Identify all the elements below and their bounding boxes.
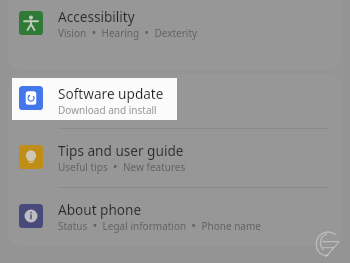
- staticText: ​Useful tips • New features: [58, 157, 186, 175]
- staticText: ​Vision • Hearing • Dexterity: [58, 23, 198, 41]
- button[interactable]: Accessibility: [0, 0, 350, 46]
- staticText: Accessibility: [58, 7, 135, 26]
- staticText: Software update: [58, 84, 164, 103]
- button[interactable]: Software update: [12, 78, 165, 119]
- button[interactable]: Tips and user guide: [0, 134, 350, 180]
- staticText: About phone: [58, 200, 142, 219]
- staticText: ​Download and install: [58, 100, 157, 118]
- staticText: ​Download and install: [58, 100, 157, 118]
- button[interactable]: About phone: [0, 193, 350, 239]
- staticText: Software update: [58, 84, 164, 103]
- button[interactable]: Software update: [0, 77, 350, 123]
- staticText: ​Status • Legal information • Phone name: [58, 216, 261, 234]
- staticText: Tips and user guide: [58, 141, 184, 160]
